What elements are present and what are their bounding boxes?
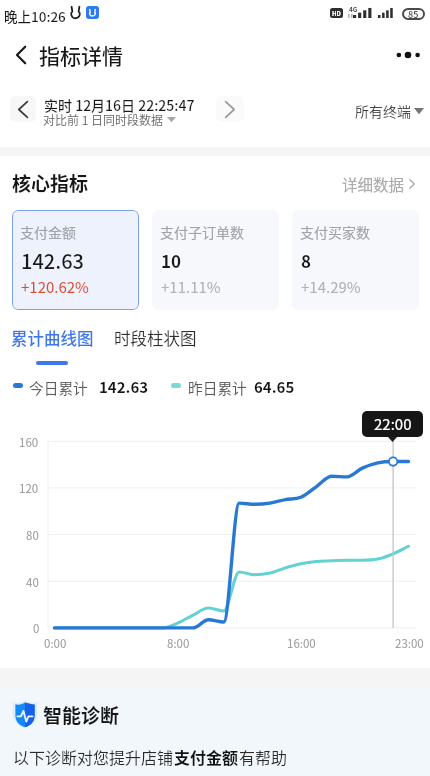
staticText: 时段柱状图 [114, 326, 197, 350]
staticText: 23:00 [395, 635, 424, 652]
staticText: 指标详情 [39, 40, 123, 70]
staticText: 支付金额 [20, 222, 76, 242]
staticText: 64.65 [254, 376, 295, 398]
staticText: 实时 12月16日 22:25:47 [44, 95, 195, 115]
button[interactable]: Next period [216, 96, 244, 122]
staticText: 85 [408, 8, 419, 20]
staticText: +14.29% [301, 276, 361, 298]
staticText: 支付子订单数 [160, 222, 244, 242]
button[interactable]: 时段柱状图 [106, 320, 205, 356]
staticText: 详细数据 [342, 173, 405, 195]
staticText: +120.62% [21, 276, 89, 298]
staticText: 8:00 [167, 635, 190, 652]
staticText: 10 [161, 248, 182, 273]
staticText: 0:00 [44, 635, 67, 652]
button[interactable]: Previous period [10, 96, 36, 122]
button[interactable]: 支付买家数 [292, 210, 419, 310]
staticText: 昨日累计 [188, 377, 247, 398]
staticText: 晚上10:26 [4, 6, 66, 26]
staticText: 4G [349, 4, 358, 13]
staticText: 142.63 [99, 376, 149, 398]
button[interactable]: 累计曲线图 [3, 320, 102, 356]
staticText: 0 [33, 620, 40, 637]
staticText: 16:00 [287, 635, 316, 652]
staticText: 支付金额 [174, 745, 239, 768]
button[interactable]: 详细数据 [342, 173, 415, 195]
staticText: 支付买家数 [300, 222, 370, 242]
staticText: 142.63 [21, 246, 84, 275]
button[interactable]: More options [390, 37, 426, 73]
staticText: 对比前 1 日同时段数据 [43, 111, 164, 128]
staticText: 160 [19, 434, 39, 451]
staticText: 累计曲线图 [11, 326, 94, 350]
staticText: HD [332, 9, 341, 18]
staticText: 有帮助 [239, 745, 288, 768]
button[interactable]: 支付金额 [12, 210, 139, 310]
button[interactable]: 对比前 1 日同时段数据 [43, 111, 176, 128]
button[interactable]: Back [3, 37, 39, 73]
staticText: 8 [301, 248, 312, 273]
staticText: 40 [26, 574, 39, 591]
staticText: 120 [19, 480, 39, 497]
button[interactable]: 所有终端 [355, 101, 424, 121]
staticText: 22:00 [374, 413, 412, 435]
staticText: 核心指标 [12, 169, 89, 197]
staticText: 智能诊断 [43, 701, 120, 729]
staticText: +11.11% [161, 276, 221, 298]
staticText: 今日累计 [29, 377, 88, 398]
staticText: 所有终端 [355, 101, 411, 121]
button[interactable]: 支付子订单数 [152, 210, 279, 310]
staticText: 80 [26, 527, 39, 544]
staticText: 以下诊断对您提升店铺 [13, 745, 174, 768]
